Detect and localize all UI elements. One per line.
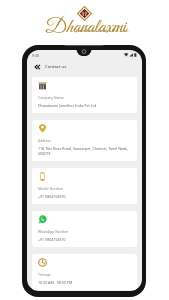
button[interactable]: Back: [31, 61, 42, 72]
staticText: 118, Nsc Bose Road, Sowcarpet, Chennai, …: [38, 146, 133, 156]
button[interactable]: Mobile Number: [32, 168, 137, 204]
staticText: Dhanalaxmi Jewellers India Pvt Ltd: [38, 103, 97, 108]
staticText: WhatsApp Number: [38, 229, 69, 234]
staticText: Jewellers (India) Pvt. Ltd.: [76, 28, 130, 34]
button[interactable]: Company Name: [32, 77, 137, 113]
staticText: Company Name: [38, 95, 64, 100]
staticText: Contact us: [45, 64, 67, 70]
staticText: Timings: [38, 272, 51, 277]
staticText: Address: [38, 138, 51, 143]
staticText: +91 9804764570: [38, 194, 66, 199]
button[interactable]: Address: [32, 120, 137, 161]
staticText: Dhanalaxmi: [45, 15, 127, 40]
staticText: 9:30: [32, 53, 40, 58]
staticText: +91 9804764570: [38, 237, 66, 242]
staticText: Mobile Number: [38, 186, 63, 191]
staticText: 10:30 AM - 08:30 PM: [38, 280, 73, 285]
button[interactable]: WhatsApp Number: [32, 211, 137, 247]
button[interactable]: Timings: [32, 254, 137, 290]
